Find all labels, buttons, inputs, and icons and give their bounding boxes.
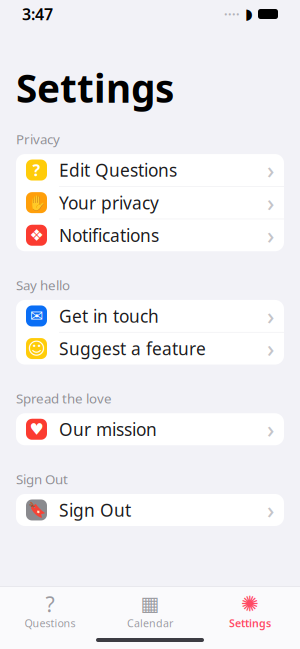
button[interactable]: ☺ <box>16 333 284 365</box>
staticText: Suggest a feature <box>59 337 206 360</box>
staticText: › <box>267 301 274 331</box>
staticText: Calendar <box>127 616 173 630</box>
staticText: ❖ <box>29 226 43 244</box>
staticText: ◗ <box>245 6 253 22</box>
staticText: ✺ <box>241 592 259 616</box>
button[interactable]: ❖ <box>16 219 284 251</box>
button[interactable]: ✺ <box>200 588 300 630</box>
button[interactable]: ? <box>16 154 284 187</box>
staticText: › <box>267 495 274 525</box>
staticText: ✋ <box>27 194 45 211</box>
staticText: Your privacy <box>59 191 159 214</box>
staticText: Edit Questions <box>59 158 177 181</box>
staticText: Spread the love <box>16 390 112 407</box>
button[interactable]: ? <box>0 588 100 630</box>
staticText: ✉ <box>30 307 43 325</box>
staticText: › <box>267 155 274 185</box>
staticText: 🔖 <box>27 502 45 518</box>
button[interactable]: ✋ <box>16 187 284 219</box>
staticText: › <box>267 220 274 250</box>
button[interactable]: 🔖 <box>16 494 284 526</box>
staticText: 3:47 <box>22 3 53 25</box>
staticText: ? <box>32 159 40 181</box>
staticText: ☺ <box>27 339 45 358</box>
button[interactable]: ♥ <box>16 413 284 445</box>
staticText: Our mission <box>59 418 157 441</box>
staticText: ♥ <box>29 420 43 438</box>
button[interactable]: ✉ <box>16 300 284 333</box>
staticText: › <box>267 333 274 364</box>
staticText: •••• <box>224 8 240 20</box>
staticText: Notifications <box>59 224 159 247</box>
staticText: ▦ <box>140 593 159 615</box>
staticText: Questions <box>24 616 75 630</box>
staticText: Settings <box>16 62 174 113</box>
staticText: Sign Out <box>16 470 68 488</box>
button[interactable]: ▦ <box>100 588 200 630</box>
staticText: Sign Out <box>59 498 131 521</box>
staticText: › <box>267 188 274 218</box>
staticText: Say hello <box>16 276 70 294</box>
staticText: Privacy <box>16 130 60 148</box>
staticText: ? <box>45 590 54 618</box>
staticText: Settings <box>229 616 271 630</box>
staticText: › <box>267 414 274 444</box>
staticText: Get in touch <box>59 304 159 327</box>
